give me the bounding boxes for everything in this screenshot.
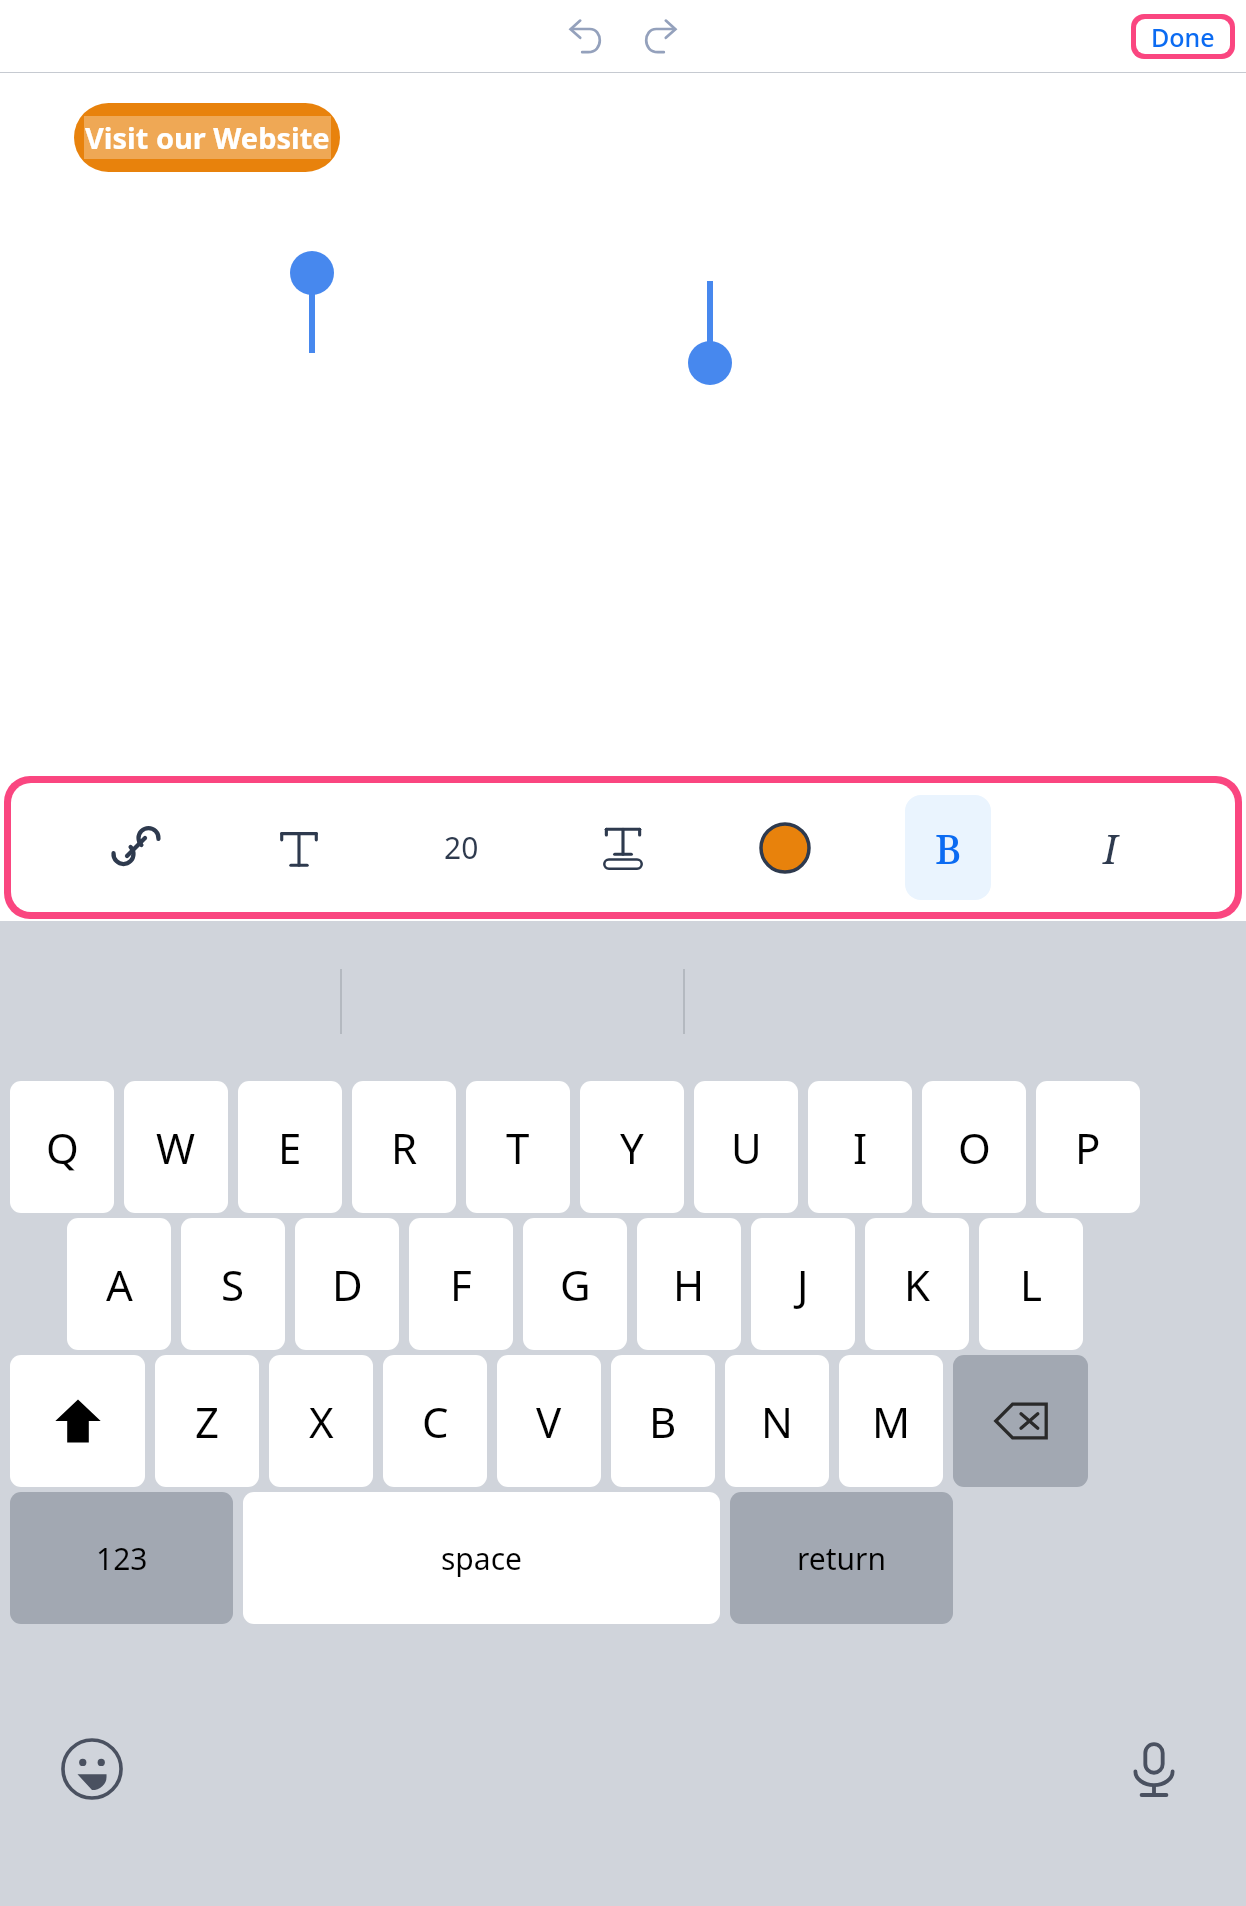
button[interactable]: I <box>808 1081 912 1213</box>
button[interactable]: Link <box>93 795 179 900</box>
staticText: F <box>450 1256 472 1313</box>
button[interactable]: U <box>694 1081 798 1213</box>
button[interactable]: O <box>922 1081 1026 1213</box>
staticText: Z <box>195 1393 220 1450</box>
staticText: L <box>1020 1256 1043 1313</box>
staticText: O <box>958 1119 991 1176</box>
staticText: return <box>797 1538 887 1579</box>
button[interactable]: Text style <box>256 795 342 900</box>
button[interactable]: F <box>409 1218 513 1350</box>
button[interactable]: Backspace <box>953 1355 1088 1487</box>
button[interactable]: B <box>905 795 991 900</box>
button[interactable]: R <box>352 1081 456 1213</box>
button[interactable]: P <box>1036 1081 1140 1213</box>
button[interactable]: Emoji <box>56 1733 128 1805</box>
button[interactable]: Z <box>155 1355 259 1487</box>
button[interactable]: J <box>751 1218 855 1350</box>
button[interactable]: D <box>295 1218 399 1350</box>
staticText: M <box>872 1393 911 1450</box>
button[interactable]: Q <box>10 1081 114 1213</box>
staticText: V <box>536 1393 562 1450</box>
button[interactable]: Voice input <box>1118 1733 1190 1805</box>
button[interactable]: B <box>611 1355 715 1487</box>
button[interactable]: space <box>243 1492 720 1624</box>
staticText: G <box>560 1256 591 1313</box>
staticText: D <box>332 1256 363 1313</box>
staticText: space <box>441 1538 522 1579</box>
button[interactable]: V <box>497 1355 601 1487</box>
staticText: J <box>797 1256 809 1313</box>
button[interactable]: N <box>725 1355 829 1487</box>
staticText: U <box>731 1119 762 1176</box>
button[interactable]: Italic <box>1067 795 1153 900</box>
button[interactable]: Visit our Website <box>74 103 340 172</box>
staticText: E <box>278 1119 302 1176</box>
button[interactable]: Colour <box>742 795 828 900</box>
button[interactable]: A <box>67 1218 171 1350</box>
button[interactable]: S <box>181 1218 285 1350</box>
button[interactable]: Shift <box>10 1355 145 1487</box>
staticText: C <box>422 1393 449 1450</box>
staticText: A <box>106 1256 133 1313</box>
button[interactable]: Done <box>1136 19 1230 54</box>
staticText: W <box>156 1119 196 1176</box>
button[interactable]: Font size <box>418 795 504 900</box>
button[interactable]: Y <box>580 1081 684 1213</box>
button[interactable]: return <box>730 1492 953 1624</box>
staticText: I <box>853 1119 868 1176</box>
staticText: P <box>1075 1119 1101 1176</box>
staticText: X <box>309 1393 334 1450</box>
button[interactable]: K <box>865 1218 969 1350</box>
staticText: 20 <box>444 827 479 868</box>
staticText: T <box>506 1119 530 1176</box>
staticText: S <box>221 1256 245 1313</box>
button[interactable]: M <box>839 1355 943 1487</box>
button[interactable]: T <box>466 1081 570 1213</box>
button[interactable]: Text background <box>580 795 666 900</box>
button[interactable]: Undo <box>558 10 612 64</box>
staticText: R <box>391 1119 418 1176</box>
staticText: B <box>935 821 962 875</box>
button[interactable]: Redo <box>634 10 688 64</box>
staticText: N <box>761 1393 793 1450</box>
staticText: 123 <box>96 1538 148 1579</box>
staticText: H <box>673 1256 705 1313</box>
button[interactable]: 123 <box>10 1492 233 1624</box>
button[interactable]: G <box>523 1218 627 1350</box>
staticText: Done <box>1151 20 1215 54</box>
button[interactable]: W <box>124 1081 228 1213</box>
staticText: I <box>1103 821 1118 875</box>
staticText: K <box>904 1256 930 1313</box>
button[interactable]: X <box>269 1355 373 1487</box>
button[interactable]: E <box>238 1081 342 1213</box>
staticText: Y <box>620 1119 644 1176</box>
button[interactable]: C <box>383 1355 487 1487</box>
button[interactable]: L <box>979 1218 1083 1350</box>
staticText: B <box>649 1393 677 1450</box>
staticText: Visit our Website <box>85 118 330 157</box>
button[interactable]: H <box>637 1218 741 1350</box>
staticText: Q <box>46 1119 79 1176</box>
